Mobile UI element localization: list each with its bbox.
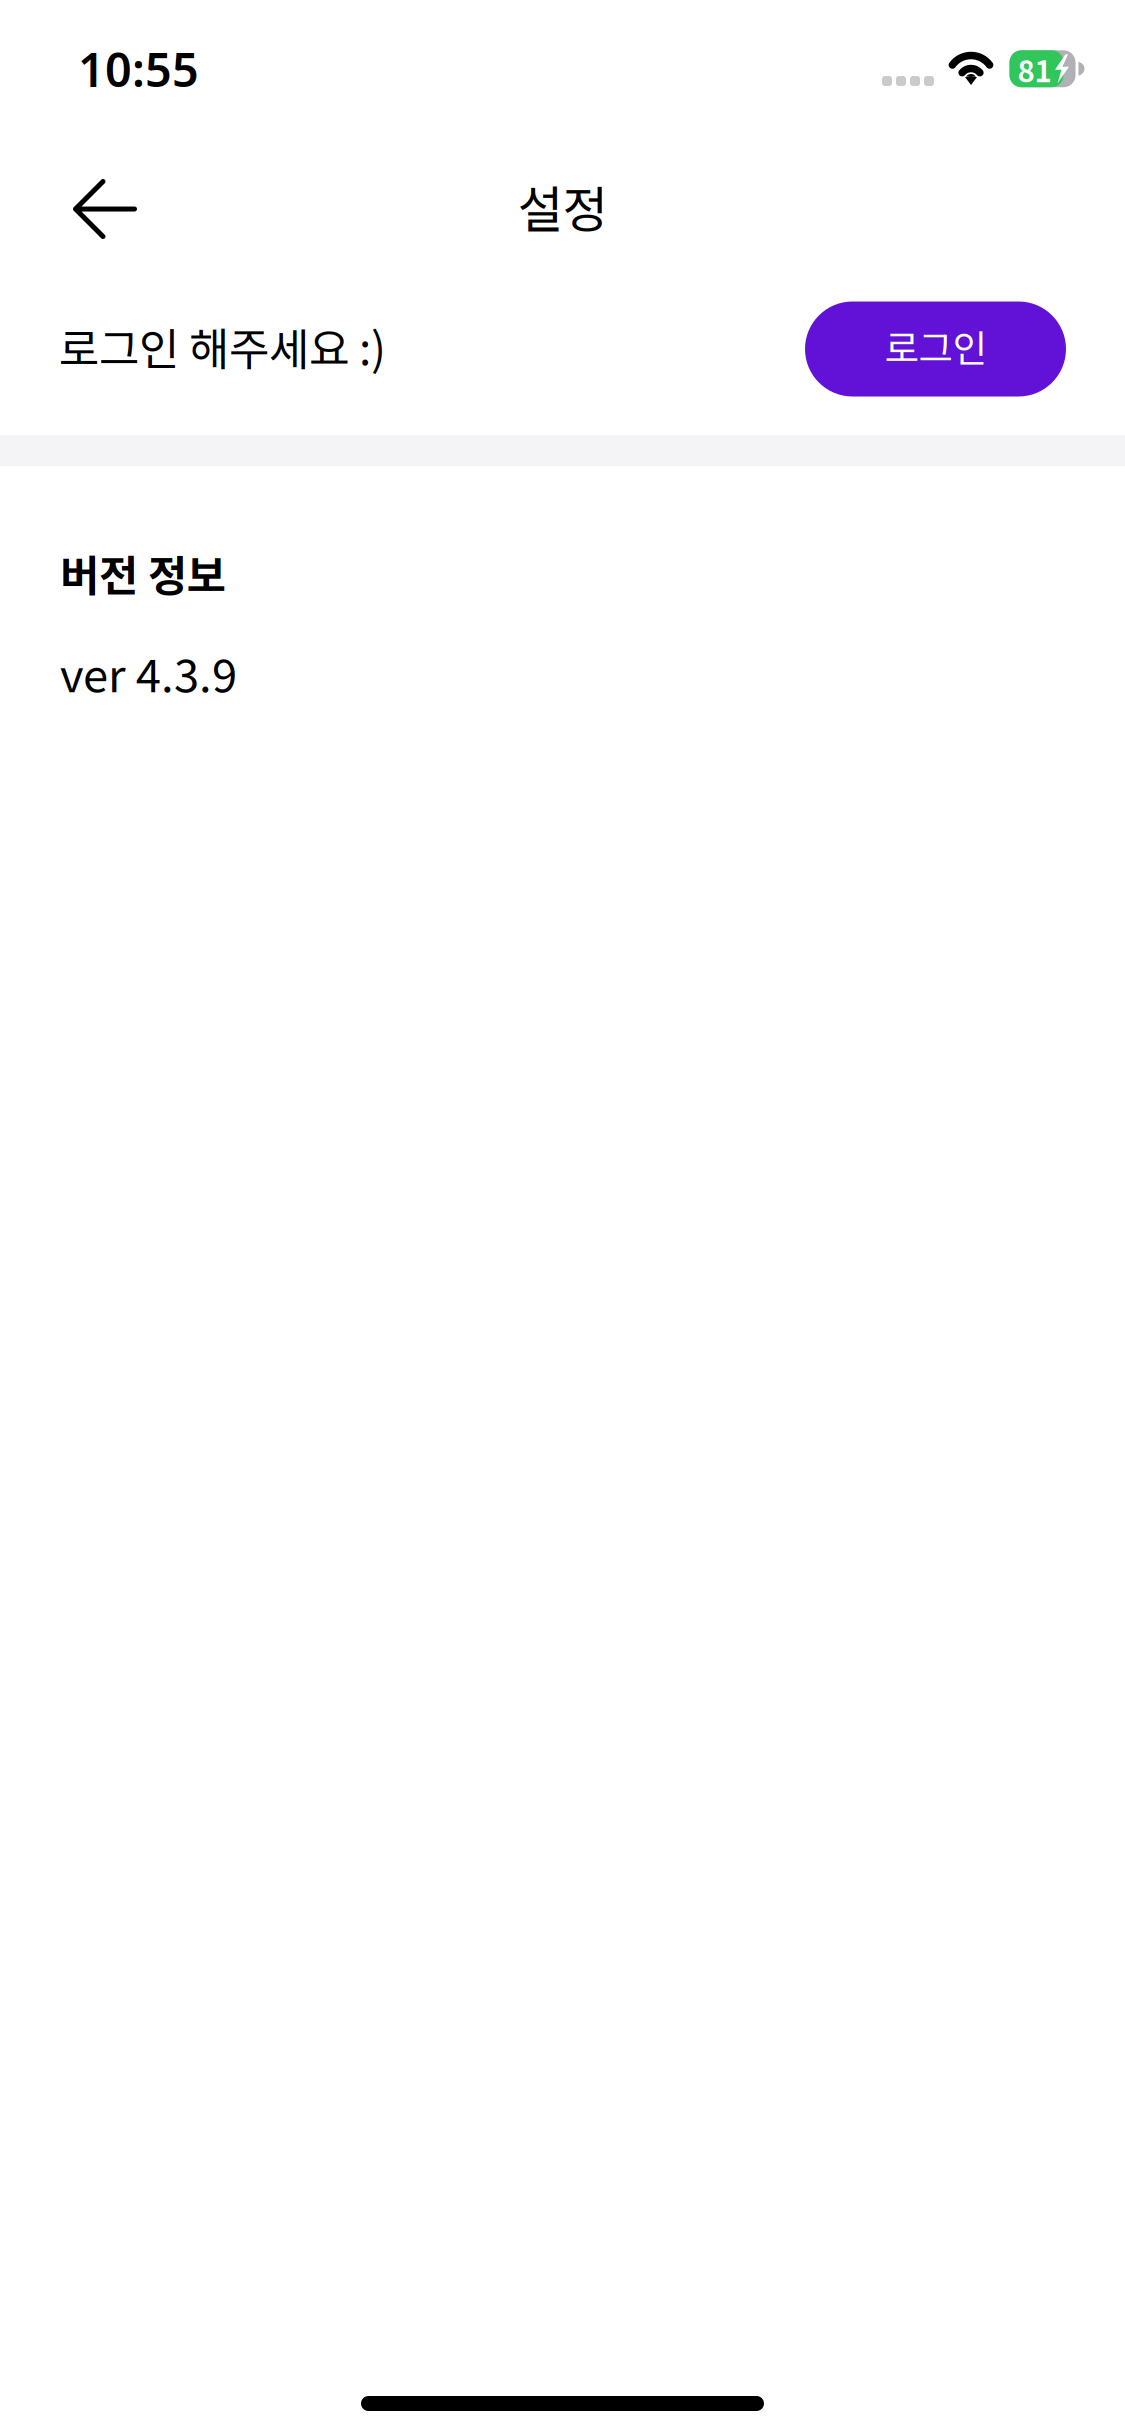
staticText: 설정 [517,170,607,242]
staticText: 81 [1017,48,1051,91]
button[interactable]: Back [43,155,168,263]
staticText: 버전 정보 [60,542,226,604]
staticText: 로그인 해주세요 :) [59,314,386,378]
staticText: ver 4.3.9 [60,640,237,705]
staticText: 10:55 [78,38,199,100]
staticText: 로그인 [884,319,986,373]
button[interactable]: 로그인 [805,301,1066,396]
